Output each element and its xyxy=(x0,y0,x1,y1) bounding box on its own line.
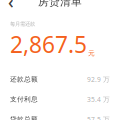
staticText: 92.9 万 xyxy=(87,75,110,84)
staticText: 每月需还款 xyxy=(10,21,35,27)
staticText: 57.5 万 xyxy=(87,115,110,120)
staticText: 35.4 万 xyxy=(87,95,110,104)
staticText: 元 xyxy=(88,49,95,57)
staticText: ‹ xyxy=(8,0,14,13)
staticText: 支付利息 xyxy=(10,95,38,103)
button[interactable]: 支付利息 xyxy=(0,89,120,109)
button[interactable]: 还款总额 xyxy=(0,69,120,89)
staticText: 2,867.5 xyxy=(10,29,87,59)
staticText: 还款总额 xyxy=(10,75,38,83)
staticText: 贷款总额 xyxy=(10,115,38,120)
staticText: 房贷清单 xyxy=(38,0,82,8)
button[interactable]: 贷款总额 xyxy=(0,109,120,120)
button[interactable]: Back xyxy=(3,0,19,10)
